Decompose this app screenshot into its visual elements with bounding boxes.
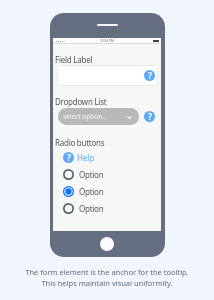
staticText: The form element is the anchor for the t… <box>25 267 189 277</box>
staticText: Option <box>79 169 104 180</box>
staticText: Field Label <box>55 54 93 65</box>
button[interactable]: Option <box>63 186 104 197</box>
staticText: select option... <box>63 112 108 121</box>
staticText: Option <box>79 186 104 197</box>
button[interactable]: Option <box>63 203 104 214</box>
button[interactable]: Help <box>63 152 74 163</box>
staticText: Option <box>79 203 104 214</box>
button[interactable]: Help <box>144 111 155 122</box>
staticText: ? <box>148 70 152 81</box>
button[interactable] <box>57 65 158 86</box>
staticText: Dropdown List <box>55 96 107 107</box>
button[interactable]: select option... <box>58 108 139 125</box>
button[interactable]: Help <box>144 70 155 81</box>
staticText: Help <box>77 152 95 163</box>
button[interactable]: Help <box>63 152 95 163</box>
button[interactable]: Home <box>100 237 114 251</box>
staticText: ? <box>67 152 71 163</box>
staticText: Radio buttons <box>55 137 105 148</box>
button[interactable]: Option <box>63 169 104 180</box>
staticText: ? <box>148 111 152 122</box>
staticText: 10:54 PM <box>100 39 114 43</box>
staticText: This helps maintain visual uniformity. <box>41 278 173 288</box>
